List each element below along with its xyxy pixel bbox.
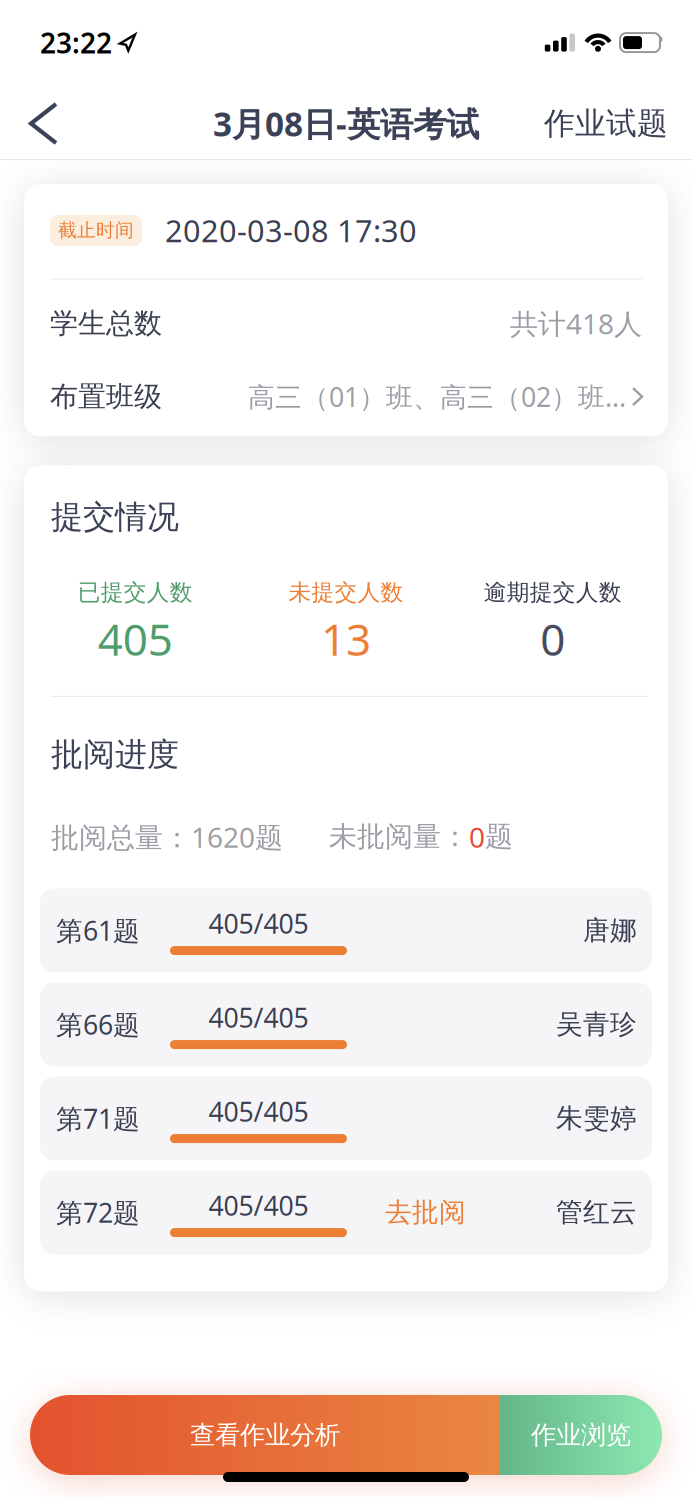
staticText: 去批阅 xyxy=(385,1196,466,1229)
staticText: 已提交人数 xyxy=(78,579,193,606)
staticText: 高三（01）班、高三（02）班... xyxy=(248,379,626,414)
staticText: 管红云 xyxy=(556,1196,637,1229)
staticText: 23:22 xyxy=(40,24,112,61)
staticText: 提交情况 xyxy=(51,497,179,537)
staticText: 405 xyxy=(98,609,173,668)
staticText: 405/405 xyxy=(208,1094,308,1129)
staticText: 未批阅量： xyxy=(329,820,469,854)
staticText: 逾期提交人数 xyxy=(484,579,622,606)
staticText: 学生总数 xyxy=(50,306,162,340)
staticText: 13 xyxy=(321,609,371,668)
staticText: 0 xyxy=(540,609,565,668)
staticText: 作业试题 xyxy=(544,105,668,142)
staticText: 截止时间 xyxy=(58,219,134,242)
staticText: 第72题 xyxy=(56,1195,140,1230)
staticText: 共计418人 xyxy=(510,305,642,342)
button[interactable]: 作业试题 xyxy=(544,105,692,142)
staticText: 批阅进度 xyxy=(51,735,179,774)
staticText: 0 xyxy=(469,818,485,855)
staticText: 第66题 xyxy=(56,1007,140,1042)
staticText: 405/405 xyxy=(208,1000,308,1035)
button[interactable]: 作业浏览 xyxy=(500,1395,662,1475)
staticText: 吴青珍 xyxy=(556,1008,637,1041)
staticText: 2020-03-08 17:30 xyxy=(165,210,417,251)
button[interactable]: Back xyxy=(0,104,80,143)
staticText: 405/405 xyxy=(208,1188,308,1223)
button[interactable]: 去批阅 xyxy=(347,1196,466,1229)
staticText: 405/405 xyxy=(208,906,308,941)
staticText: 布置班级 xyxy=(50,379,162,414)
staticText: 批阅总量：1620题 xyxy=(51,818,283,855)
staticText: 朱雯婷 xyxy=(556,1102,637,1135)
staticText: 题 xyxy=(485,820,513,854)
staticText: 第71题 xyxy=(56,1101,140,1136)
staticText: 3月08日-英语考试 xyxy=(213,101,479,146)
staticText: 第61题 xyxy=(56,913,140,948)
staticText: 唐娜 xyxy=(583,914,637,947)
staticText: 未提交人数 xyxy=(288,579,403,606)
button[interactable]: 布置班级 xyxy=(50,379,642,414)
staticText: 查看作业分析 xyxy=(190,1419,340,1450)
staticText: 作业浏览 xyxy=(531,1419,631,1450)
button[interactable]: 查看作业分析 xyxy=(30,1395,500,1475)
